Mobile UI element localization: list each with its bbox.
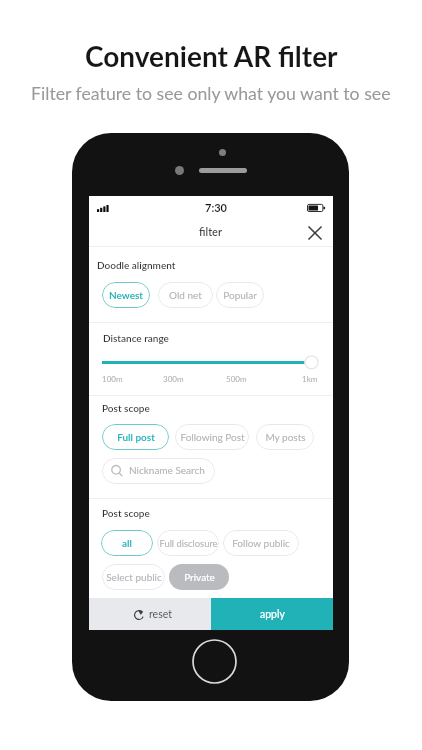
staticText: 500m [226,374,247,384]
button[interactable]: Select public [102,564,165,590]
button[interactable]: Private [169,564,229,590]
staticText: Nickname Search [129,464,205,476]
staticText: Filter feature to see only what you want… [31,83,391,104]
staticText: 300m [163,374,184,384]
button[interactable]: apply [211,598,333,630]
button[interactable]: Close filter [303,221,327,245]
staticText: Select public [106,571,162,583]
button[interactable]: all [101,530,153,556]
button[interactable]: Full disclosure [157,530,219,556]
staticText: 100m [102,374,123,384]
button[interactable]: Following Post [175,424,249,450]
button[interactable]: Nickname Search [102,458,215,484]
staticText: Post scope [102,507,150,519]
staticText: 7:30 [205,201,227,214]
staticText: Following Post [180,431,245,443]
staticText: Newest [109,289,143,301]
staticText: all [122,537,132,549]
staticText: Full post [117,431,155,443]
staticText: Full disclosure [159,538,218,549]
button[interactable]: Popular [216,282,264,308]
staticText: Distance range [103,332,169,344]
staticText: Follow public [232,537,290,549]
button[interactable]: reset [89,598,211,630]
staticText: Popular [223,289,257,301]
staticText: Doodle alignment [97,259,176,271]
staticText: filter [199,225,223,238]
button[interactable]: Full post [102,424,169,450]
staticText: 1km [302,374,318,384]
staticText: Old net [169,289,202,301]
staticText: My posts [265,431,306,443]
button[interactable]: Follow public [223,530,299,556]
staticText: Private [184,571,215,583]
staticText: Post scope [102,402,150,414]
staticText: Convenient AR filter [85,39,338,73]
button[interactable]: Old net [158,282,213,308]
staticText: apply [260,608,285,621]
staticText: reset [149,608,172,621]
button[interactable]: Newest [102,282,150,308]
button[interactable]: My posts [256,424,314,450]
